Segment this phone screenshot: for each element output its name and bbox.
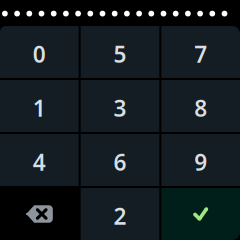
button[interactable]: 1 (0, 80, 79, 132)
staticText: 7 (194, 39, 207, 69)
button[interactable]: 8 (161, 80, 240, 132)
button[interactable]: 6 (81, 134, 159, 186)
button[interactable]: Delete (0, 188, 79, 240)
staticText: 6 (113, 147, 126, 177)
staticText: 2 (113, 201, 126, 231)
staticText: 0 (33, 39, 46, 69)
staticText: 3 (113, 93, 126, 123)
button[interactable]: 0 (0, 26, 79, 78)
button[interactable]: 9 (161, 134, 240, 186)
button[interactable]: 7 (161, 26, 240, 78)
staticText: 4 (33, 147, 46, 177)
staticText: 9 (194, 147, 207, 177)
button[interactable]: 3 (81, 80, 159, 132)
button[interactable]: Confirm (161, 188, 240, 240)
staticText: 5 (113, 39, 126, 69)
button[interactable]: 4 (0, 134, 79, 186)
button[interactable]: 2 (81, 188, 159, 240)
staticText: 8 (194, 93, 207, 123)
staticText: 1 (33, 93, 46, 123)
button[interactable]: 5 (81, 26, 159, 78)
